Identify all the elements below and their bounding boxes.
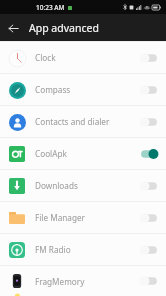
button[interactable]: Disabled [138,178,160,194]
button[interactable]: Disabled [138,210,160,226]
button[interactable]: Compass [0,74,166,105]
button[interactable]: Downloads [0,170,166,201]
button[interactable]: Contacts and dialer [0,106,166,137]
staticText: App advanced [29,21,99,35]
button[interactable]: Disabled [138,50,160,66]
button[interactable]: Disabled [138,273,160,289]
button[interactable]: Back [3,18,23,38]
staticText: Downloads [35,180,78,191]
staticText: FragMemory [35,276,85,287]
button[interactable]: CoolApk [0,138,166,169]
staticText: CoolApk [35,148,67,159]
staticText: Compass [35,84,71,95]
button[interactable]: Enabled [138,146,160,162]
staticText: Clock [35,52,56,63]
button[interactable]: File Manager [0,202,166,233]
button[interactable]: FragMemory [0,266,166,296]
button[interactable]: Clock [0,42,166,73]
staticText: FM Radio [35,244,71,255]
button[interactable]: Disabled [138,82,160,98]
button[interactable]: Disabled [138,242,160,258]
button[interactable]: FM Radio [0,234,166,265]
button[interactable]: Disabled [138,114,160,130]
staticText: File Manager [35,212,85,223]
staticText: Contacts and dialer [35,116,110,127]
staticText: 10:23 AM [36,3,65,12]
